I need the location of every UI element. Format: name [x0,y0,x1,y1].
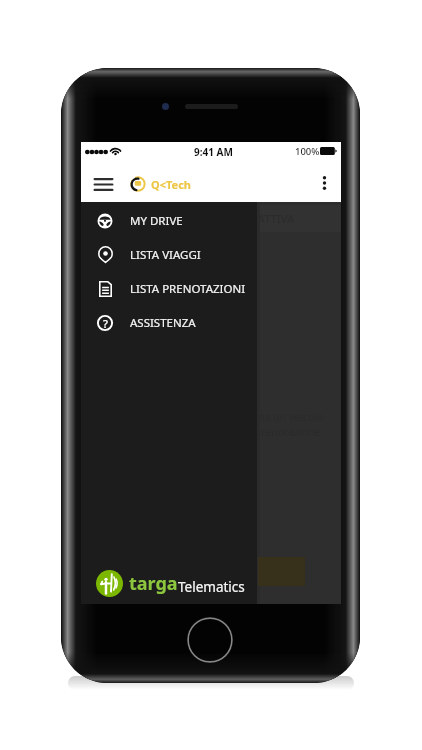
button[interactable]: Open navigation menu [85,166,122,203]
staticText: targa [129,571,178,596]
staticText: 9:41 AM [194,145,233,159]
staticText: ASSISTENZA [130,315,196,331]
button[interactable]: ? [81,306,257,340]
button[interactable]: Home [187,617,233,663]
staticText: MY DRIVE [130,213,183,229]
button[interactable]: MY DRIVE [81,204,257,238]
staticText: 100% [295,145,320,158]
staticText: Telematics [178,578,245,596]
staticText: Seleziona un veicolo per la prenotazione… [224,410,324,439]
staticText: Q<Tech [151,177,191,192]
button[interactable]: More options [307,166,341,200]
button[interactable]: LISTA PRENOTAZIONI [81,272,257,306]
staticText: LISTA PRENOTAZIONI [130,281,246,297]
button[interactable]: LISTA VIAGGI [81,238,257,272]
staticText: LISTA VIAGGI [130,247,201,263]
staticText: AUTO ATTIVA [225,211,295,226]
staticText: ? [103,316,108,331]
